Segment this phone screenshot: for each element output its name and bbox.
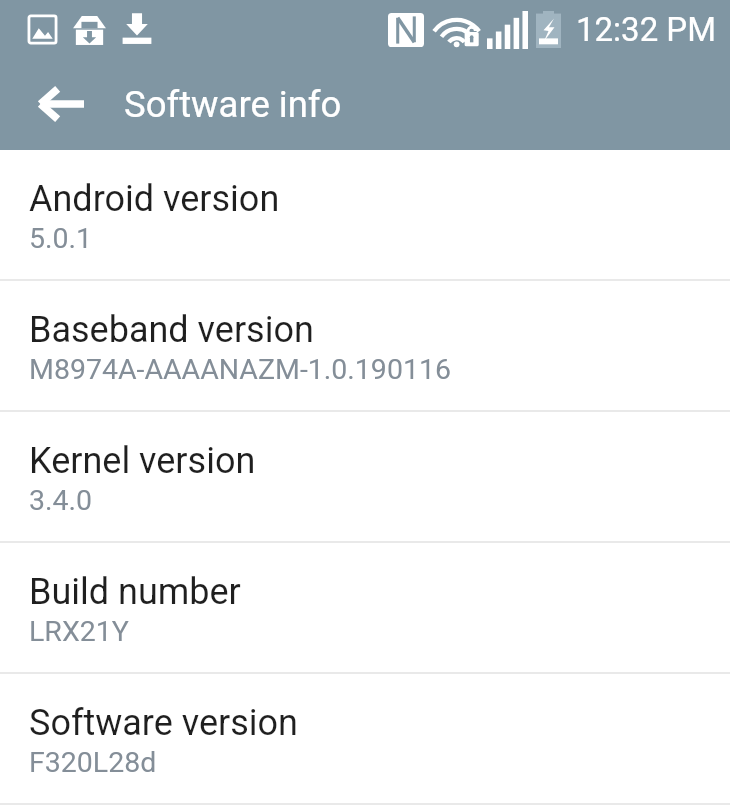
staticText: M8974A-AAAANAZM-1.0.190116: [29, 353, 451, 386]
staticText: 3.4.0: [29, 484, 93, 517]
staticText: Baseband version: [29, 309, 314, 351]
staticText: Software info: [124, 83, 342, 126]
staticText: Build number: [29, 571, 241, 613]
button[interactable]: Kernel version: [0, 412, 730, 541]
staticText: Kernel version: [29, 440, 256, 482]
staticText: LRX21Y: [29, 615, 129, 648]
staticText: 12:32 PM: [576, 10, 716, 49]
button[interactable]: Software version: [0, 674, 730, 803]
staticText: F320L28d: [29, 746, 157, 779]
button[interactable]: Back: [16, 60, 104, 148]
button[interactable]: Android version: [0, 150, 730, 279]
staticText: Android version: [29, 178, 280, 220]
staticText: 5.0.1: [29, 222, 93, 255]
button[interactable]: Baseband version: [0, 281, 730, 410]
staticText: Software version: [29, 702, 298, 744]
button[interactable]: Build number: [0, 543, 730, 672]
